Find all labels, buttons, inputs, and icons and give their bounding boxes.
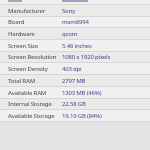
staticText: qcom <box>62 30 78 38</box>
staticText: Internal Storage <box>8 100 52 108</box>
staticText: msm8994 <box>62 18 89 26</box>
staticText: Available RAM <box>8 89 47 97</box>
staticText: Available Storage <box>8 112 55 120</box>
staticText: Hardware <box>8 30 35 38</box>
staticText: 19.19 GB (84%) <box>62 112 102 120</box>
staticText: Sony <box>62 7 76 15</box>
staticText: Screen Resolution <box>8 53 57 61</box>
staticText: 5.46 inches <box>62 42 92 50</box>
staticText: 1080 x 1920 pixels <box>62 53 111 61</box>
staticText: 22.58 GB <box>62 100 86 108</box>
staticText: 1303 MB (46%) <box>62 89 102 97</box>
staticText: Manufacturer <box>8 7 46 15</box>
staticText: 403 dpi <box>62 65 82 73</box>
staticText: Board <box>8 18 25 26</box>
staticText: 2797 MB <box>62 77 86 85</box>
staticText: Screen Density <box>8 65 48 73</box>
staticText: Total RAM <box>8 77 35 85</box>
staticText: Screen Size <box>8 42 38 50</box>
